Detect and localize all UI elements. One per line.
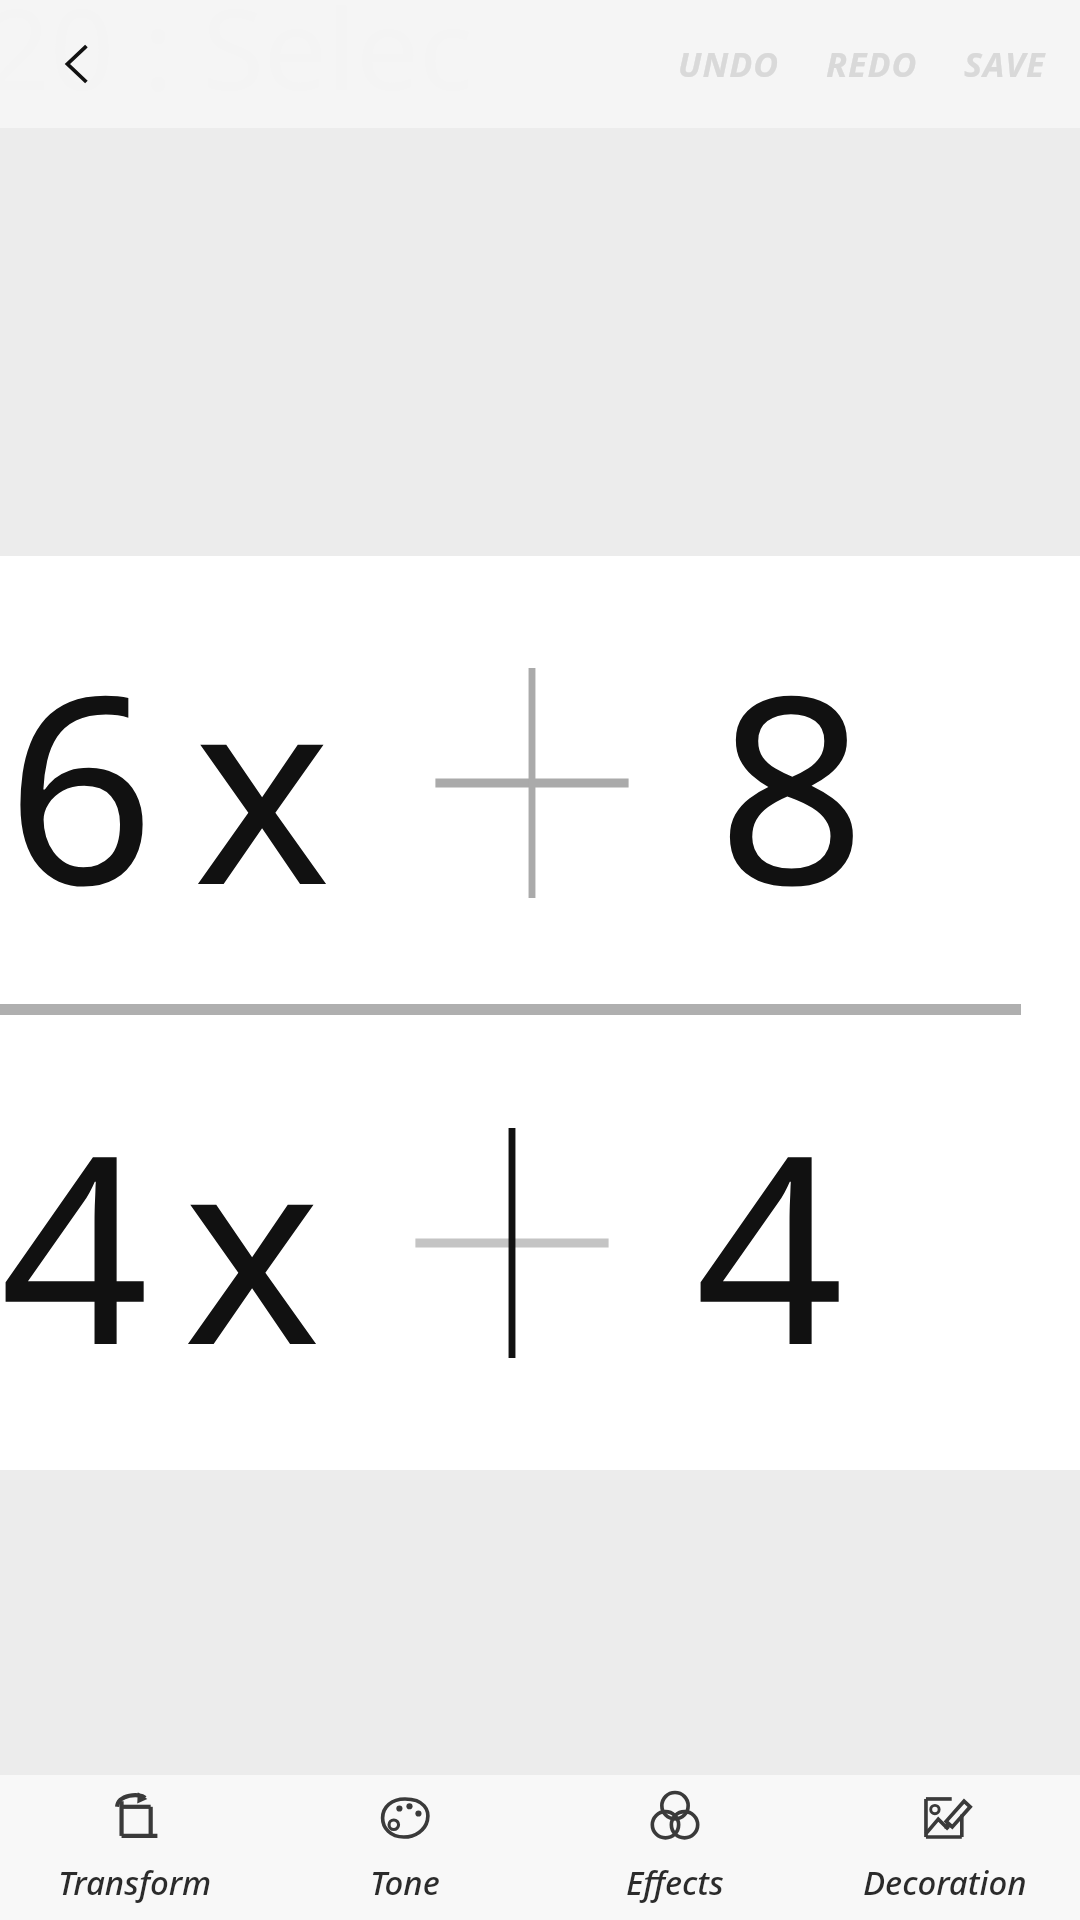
button[interactable]: Back: [30, 16, 126, 112]
button[interactable]: Decoration: [810, 1775, 1080, 1920]
staticText: Effects: [626, 1860, 724, 1905]
staticText: REDO: [826, 41, 918, 87]
staticText: 6: [6, 606, 155, 960]
staticText: Tone: [370, 1860, 440, 1905]
staticText: x: [183, 1066, 321, 1420]
staticText: 4: [0, 1066, 149, 1420]
button[interactable]: SAVE: [958, 31, 1052, 97]
button[interactable]: Tone: [270, 1775, 540, 1920]
staticText: SAVE: [964, 41, 1046, 87]
other: Tone: [377, 1790, 433, 1846]
button[interactable]: UNDO: [672, 31, 786, 97]
staticText: x: [193, 606, 331, 960]
other: Decoration: [917, 1790, 973, 1846]
staticText: 8: [717, 606, 866, 960]
other: Effects: [647, 1790, 703, 1846]
staticText: UNDO: [678, 41, 780, 87]
button[interactable]: Effects: [540, 1775, 810, 1920]
staticText: 4: [695, 1066, 844, 1420]
button[interactable]: Transform: [0, 1775, 270, 1920]
other: Transform: [107, 1790, 163, 1846]
button[interactable]: REDO: [820, 31, 924, 97]
staticText: 20 : Selec: [0, 0, 473, 110]
staticText: Decoration: [863, 1860, 1027, 1905]
staticText: Transform: [58, 1860, 212, 1905]
